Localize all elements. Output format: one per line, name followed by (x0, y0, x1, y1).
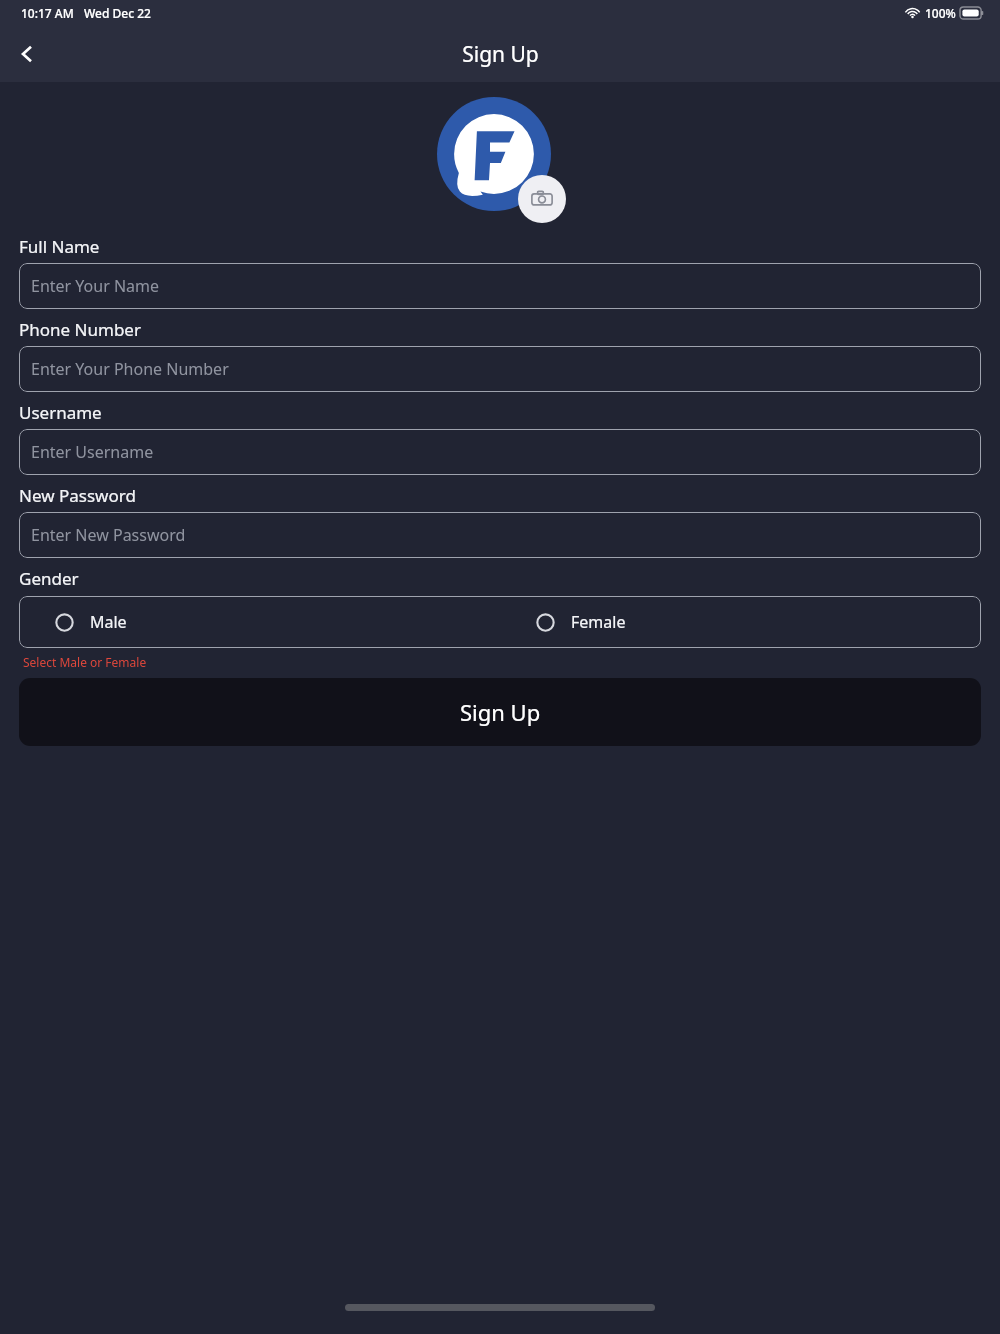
staticText: Enter Username (31, 441, 154, 463)
button[interactable]: Enter New Password (19, 512, 981, 558)
staticText: Enter Your Phone Number (31, 358, 229, 380)
staticText: 100% (925, 5, 956, 21)
button[interactable]: Enter Your Name (19, 263, 981, 309)
button[interactable]: Change photo (518, 175, 566, 223)
staticText: Female (571, 611, 626, 633)
staticText: Select Male or Female (23, 654, 147, 670)
staticText: New Password (19, 484, 136, 507)
staticText: 10:17 AM (21, 5, 74, 21)
staticText: Sign Up (460, 697, 541, 727)
button[interactable]: Back (6, 33, 48, 75)
staticText: Male (90, 611, 127, 633)
button[interactable]: Enter Your Phone Number (19, 346, 981, 392)
staticText: Enter Your Name (31, 275, 160, 297)
button[interactable]: Sign Up (19, 678, 981, 746)
button[interactable]: Female (500, 596, 981, 648)
staticText: Username (19, 401, 102, 424)
staticText: Enter New Password (31, 524, 186, 546)
staticText: Phone Number (19, 318, 141, 341)
staticText: Sign Up (462, 40, 539, 69)
staticText: Wed Dec 22 (84, 5, 151, 21)
button[interactable]: Male (19, 596, 500, 648)
button[interactable]: Enter Username (19, 429, 981, 475)
staticText: Gender (19, 567, 79, 590)
staticText: Full Name (19, 235, 100, 258)
